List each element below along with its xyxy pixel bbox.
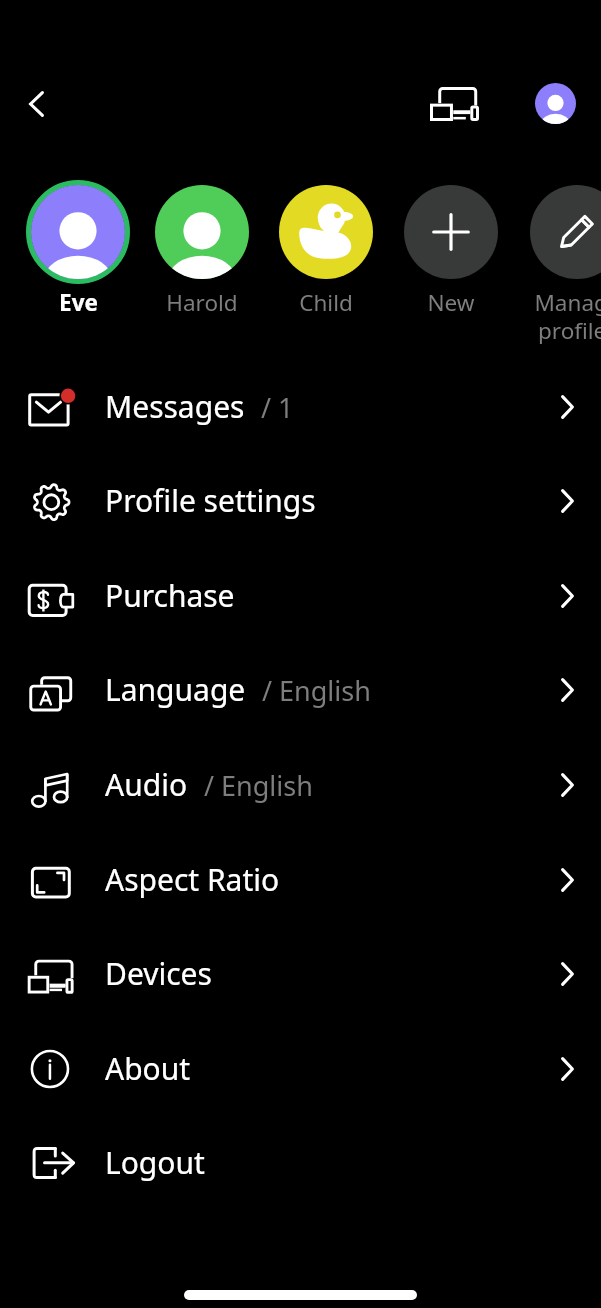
button[interactable]: Child [264, 180, 388, 318]
staticText: Language [105, 669, 246, 710]
staticText: Child [299, 287, 353, 318]
button[interactable]: Profile [535, 83, 576, 124]
button[interactable]: Messages [0, 360, 601, 454]
staticText: Manage profiles [534, 287, 601, 346]
staticText: / English [204, 767, 313, 804]
staticText: Logout [105, 1142, 205, 1183]
staticText: Purchase [105, 575, 235, 616]
button[interactable]: Cast to device [424, 73, 485, 134]
button[interactable]: Devices [0, 927, 601, 1021]
button[interactable]: Manage profiles [515, 180, 601, 346]
button[interactable]: Eve [16, 180, 140, 318]
staticText: Eve [59, 287, 98, 318]
button[interactable]: New [389, 180, 513, 318]
staticText: About [105, 1048, 191, 1089]
staticText: / 1 [261, 389, 294, 426]
staticText: Profile settings [105, 480, 316, 521]
button[interactable]: Back [6, 73, 67, 134]
button[interactable]: Profile settings [0, 454, 601, 548]
button[interactable]: Harold [140, 180, 264, 318]
button[interactable]: About [0, 1022, 601, 1116]
staticText: Devices [105, 953, 212, 994]
button[interactable]: Audio [0, 738, 601, 832]
staticText: Messages [105, 386, 245, 427]
staticText: New [427, 287, 475, 318]
staticText: Aspect Ratio [105, 859, 280, 900]
button[interactable]: Aspect Ratio [0, 833, 601, 927]
button[interactable]: Purchase [0, 549, 601, 643]
staticText: Harold [166, 287, 238, 318]
staticText: / English [262, 672, 371, 709]
button[interactable]: Language [0, 643, 601, 737]
button[interactable]: Logout [0, 1116, 601, 1210]
staticText: Audio [105, 764, 188, 805]
